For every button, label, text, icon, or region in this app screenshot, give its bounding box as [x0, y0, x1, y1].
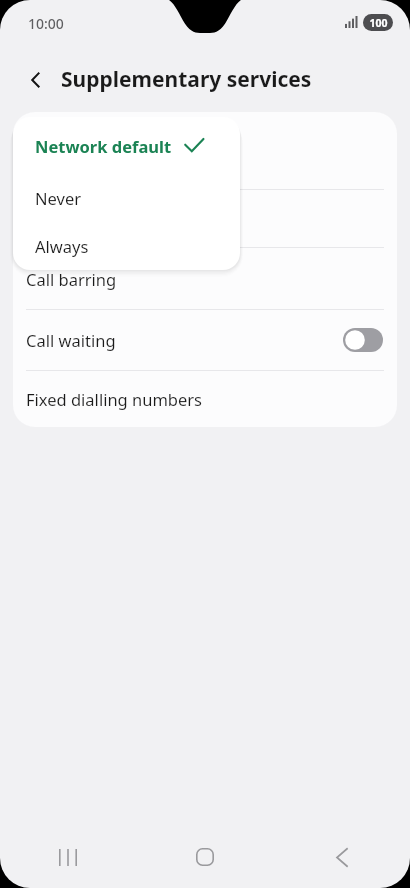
button[interactable]: Never — [13, 174, 240, 222]
staticText: Never — [35, 187, 82, 209]
button[interactable] — [13, 190, 397, 247]
staticText: Always — [35, 235, 89, 257]
button[interactable]: Home — [136, 826, 273, 888]
button[interactable]: Recent apps — [0, 826, 136, 888]
staticText: 10:00 — [28, 14, 64, 33]
button[interactable]: Call waiting toggle — [343, 328, 383, 352]
button[interactable]: Call barring — [13, 248, 397, 309]
button[interactable]: Always — [13, 222, 240, 270]
button[interactable]: Navigate up — [16, 60, 56, 100]
button[interactable]: Call waiting — [13, 310, 397, 370]
button[interactable] — [13, 112, 397, 189]
staticText: Supplementary services — [61, 65, 312, 94]
staticText: 100 — [369, 16, 388, 30]
staticText: Call waiting — [26, 329, 116, 351]
staticText: Fixed dialling numbers — [26, 388, 203, 410]
button[interactable]: Fixed dialling numbers — [13, 371, 397, 427]
staticText: Call barring — [26, 268, 117, 290]
button[interactable]: Network default — [13, 117, 240, 174]
button[interactable]: Back — [273, 826, 410, 888]
staticText: Network default — [35, 135, 172, 157]
